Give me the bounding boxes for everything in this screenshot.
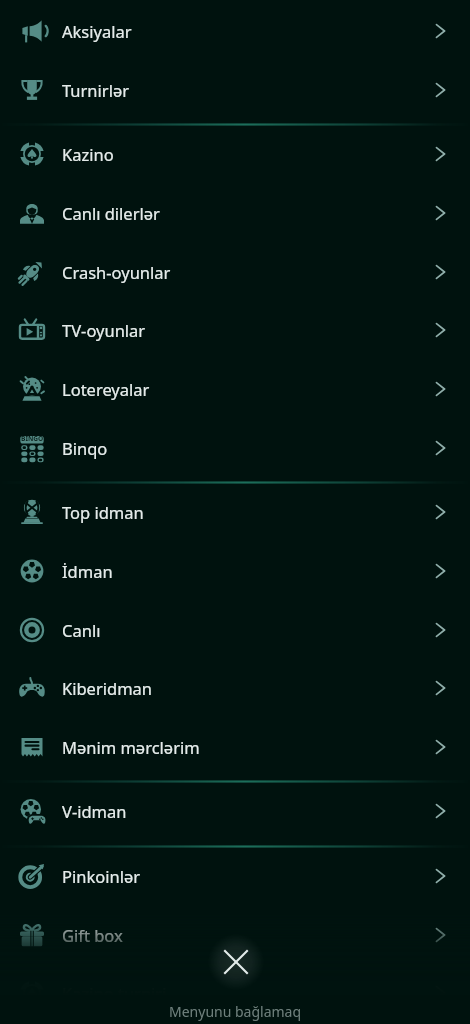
- staticText: Mənim mərclərim: [62, 736, 200, 758]
- staticText: Kiberidman: [62, 677, 153, 699]
- button[interactable]: Kazino turniri: [0, 963, 470, 1022]
- button[interactable]: V-idman: [0, 781, 470, 840]
- staticText: Lotereyalar: [62, 378, 150, 400]
- staticText: Turnirlər: [62, 79, 130, 101]
- staticText: Canlı dilerlər: [62, 202, 160, 224]
- button[interactable]: Menyunu bağlamaq: [208, 934, 264, 990]
- button[interactable]: Aksiyalar: [0, 1, 470, 60]
- staticText: Top idman: [62, 501, 144, 523]
- staticText: BINGO: [21, 434, 44, 443]
- staticText: TV-oyunlar: [62, 319, 146, 341]
- button[interactable]: Mənim mərclərim: [0, 717, 470, 776]
- button[interactable]: Turnirlər: [0, 60, 470, 119]
- staticText: Kazino: [62, 143, 114, 165]
- staticText: Menyunu bağlamaq: [169, 1002, 302, 1021]
- staticText: V-idman: [62, 800, 127, 822]
- button[interactable]: Canlı dilerlər: [0, 183, 470, 242]
- staticText: Gift box: [62, 924, 123, 946]
- staticText: Pinkoinlər: [62, 865, 141, 887]
- button[interactable]: BINGO: [0, 418, 470, 477]
- staticText: Crash-oyunlar: [62, 261, 171, 283]
- button[interactable]: Kazino: [0, 124, 470, 183]
- button[interactable]: Top idman: [0, 482, 470, 541]
- button[interactable]: TV-oyunlar: [0, 300, 470, 359]
- staticText: Binqo: [62, 437, 108, 459]
- staticText: Aksiyalar: [62, 20, 132, 42]
- button[interactable]: Lotereyalar: [0, 359, 470, 418]
- staticText: İdman: [62, 560, 113, 582]
- staticText: Canlı: [62, 619, 101, 641]
- button[interactable]: İdman: [0, 541, 470, 600]
- button[interactable]: Crash-oyunlar: [0, 242, 470, 301]
- button[interactable]: Pinkoinlər: [0, 846, 470, 905]
- button[interactable]: Canlı: [0, 600, 470, 659]
- button[interactable]: Kiberidman: [0, 658, 470, 717]
- button[interactable]: Gift box: [0, 905, 470, 964]
